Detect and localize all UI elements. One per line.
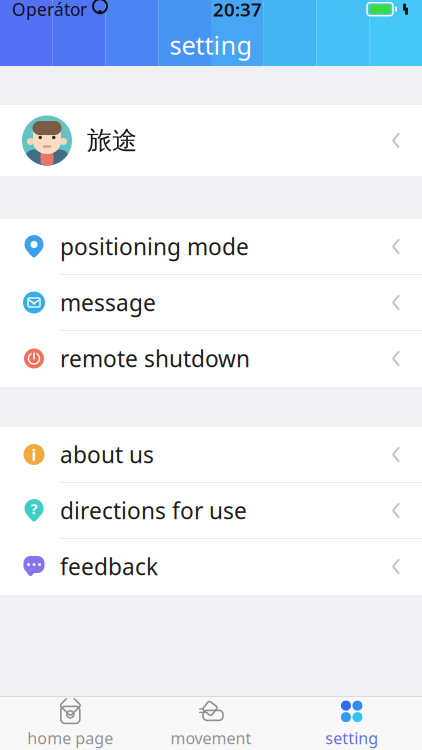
button[interactable]: i bbox=[0, 427, 422, 483]
staticText: setting bbox=[169, 28, 252, 62]
button[interactable]: 旅途 bbox=[0, 105, 422, 176]
staticText: home page bbox=[27, 727, 113, 749]
button[interactable]: ? bbox=[0, 483, 422, 539]
staticText: setting bbox=[325, 727, 378, 749]
staticText: ? bbox=[30, 499, 37, 518]
button[interactable]: message bbox=[0, 275, 422, 331]
staticText: feedback bbox=[60, 551, 158, 581]
staticText: 旅途 bbox=[87, 125, 137, 156]
staticText: i bbox=[31, 444, 36, 465]
staticText: Operátor bbox=[12, 0, 87, 21]
button[interactable]: home page bbox=[0, 697, 141, 750]
staticText: message bbox=[60, 287, 156, 317]
staticText: positioning mode bbox=[60, 231, 249, 261]
staticText: remote shutdown bbox=[60, 343, 250, 373]
button[interactable]: setting bbox=[281, 697, 422, 750]
button[interactable]: remote shutdown bbox=[0, 331, 422, 387]
button[interactable]: movement bbox=[141, 697, 281, 750]
staticText: 20:37 bbox=[213, 0, 262, 22]
staticText: directions for use bbox=[60, 495, 247, 525]
button[interactable]: positioning mode bbox=[0, 219, 422, 275]
staticText: about us bbox=[60, 439, 154, 469]
button[interactable]: feedback bbox=[0, 539, 422, 595]
staticText: movement bbox=[170, 727, 251, 749]
